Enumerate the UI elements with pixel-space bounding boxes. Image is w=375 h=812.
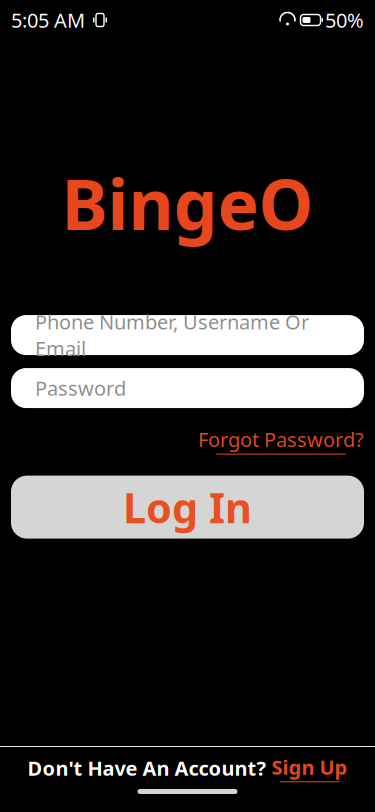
- staticText: Password: [35, 375, 126, 401]
- staticText: 5:05 AM: [11, 7, 85, 33]
- staticText: Log In: [123, 480, 252, 535]
- staticText: Forgot Password?: [198, 426, 364, 453]
- button[interactable]: Forgot Password?: [198, 426, 364, 455]
- staticText: Sign Up: [271, 754, 347, 780]
- staticText: 50%: [325, 7, 364, 33]
- button[interactable]: Don't Have An Account?: [0, 747, 375, 789]
- staticText: BingeO: [61, 157, 313, 249]
- staticText: Don't Have An Account?: [27, 755, 266, 781]
- staticText: Phone Number, Username Or Email: [35, 308, 309, 362]
- button[interactable]: Log In: [11, 476, 364, 539]
